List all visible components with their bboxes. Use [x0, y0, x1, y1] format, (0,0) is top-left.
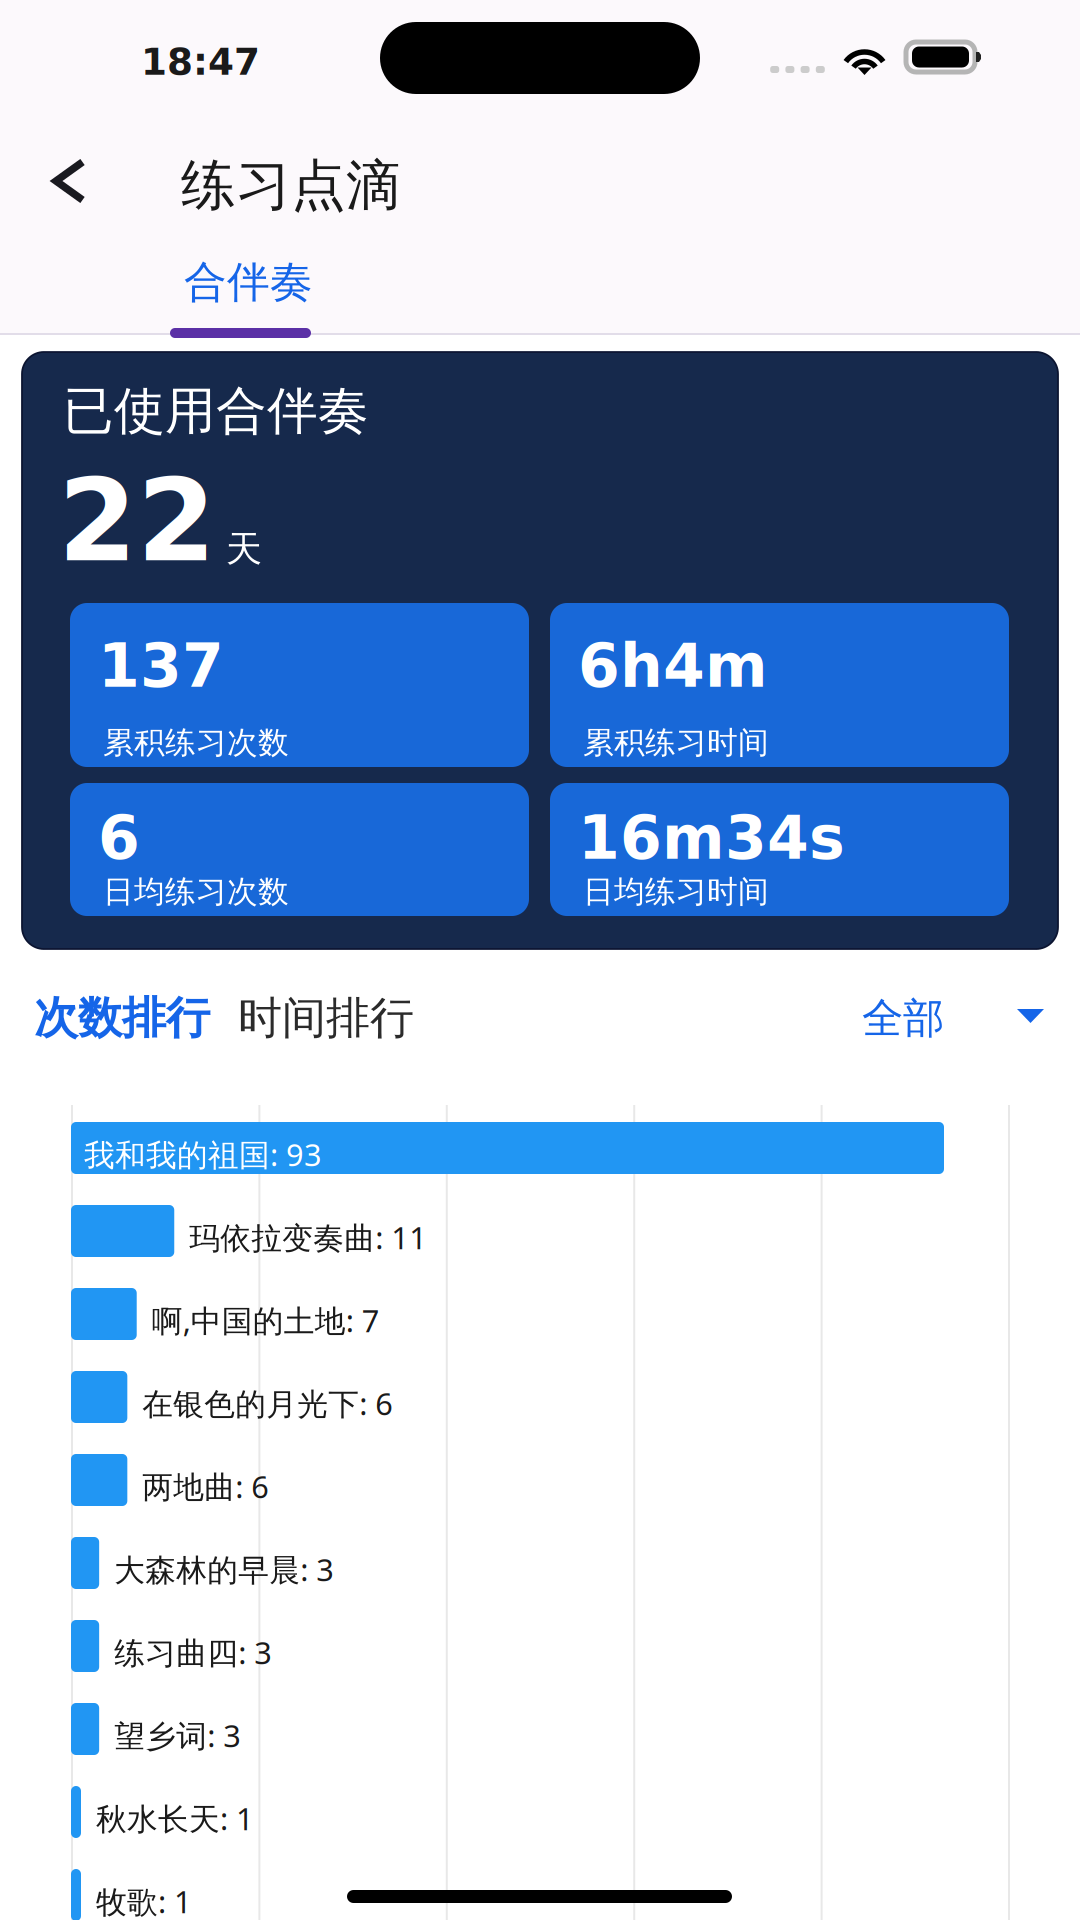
staticText: 望乡词: 3	[114, 1715, 241, 1756]
staticText: 合伴奏	[184, 256, 313, 308]
staticText: 在银色的月光下: 6	[142, 1383, 393, 1424]
staticText: 已使用合伴奏	[63, 380, 369, 442]
staticText: 日均练习时间	[583, 873, 769, 911]
button[interactable]: 时间排行	[0, 967, 444, 1069]
staticText: 天	[226, 527, 262, 571]
staticText: 秋水长天: 1	[96, 1798, 254, 1839]
staticText: 大森林的早晨: 3	[114, 1549, 334, 1590]
button[interactable]: 137	[70, 603, 529, 767]
staticText: 日均练习次数	[103, 873, 289, 911]
button[interactable]: 全部	[0, 967, 1080, 1059]
staticText: 6	[98, 803, 140, 873]
staticText: 累积练习时间	[583, 724, 769, 762]
staticText: 我和我的祖国: 93	[84, 1134, 322, 1175]
staticText: 练习曲四: 3	[114, 1632, 272, 1673]
button[interactable]: Back	[0, 116, 116, 218]
staticText: 牧歌: 1	[96, 1881, 192, 1920]
staticText: 6h4m	[578, 631, 768, 701]
button[interactable]: 16m34s	[550, 783, 1009, 916]
staticText: 练习点滴	[181, 152, 401, 219]
staticText: 137	[98, 631, 224, 701]
button[interactable]: 次数排行	[0, 967, 225, 1069]
staticText: 啊,中国的土地: 7	[152, 1300, 380, 1341]
button[interactable]: 6h4m	[550, 603, 1009, 767]
staticText: 玛依拉变奏曲: 11	[189, 1217, 427, 1258]
staticText: 18:47	[141, 40, 260, 83]
staticText: 累积练习次数	[103, 724, 289, 762]
staticText: 次数排行	[34, 991, 210, 1045]
button[interactable]: 6	[70, 783, 529, 916]
staticText: 16m34s	[578, 803, 845, 873]
staticText: 两地曲: 6	[142, 1466, 269, 1507]
button[interactable]: 合伴奏	[0, 225, 460, 338]
staticText: 全部	[862, 993, 944, 1044]
staticText: 时间排行	[238, 991, 414, 1045]
staticText: 22	[58, 455, 216, 587]
